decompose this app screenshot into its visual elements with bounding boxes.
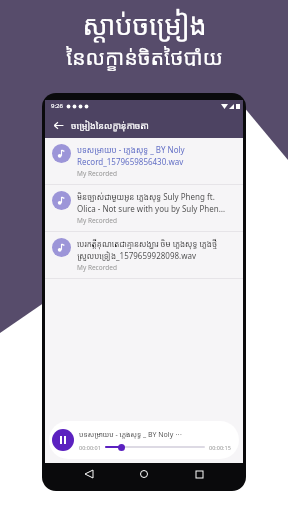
button[interactable]: មិនច្បាស់ជាមួយអូន ភ្លេងសុទ្ធ Suly Pheng … [45, 185, 243, 231]
staticText: 00:00:15 [209, 444, 231, 451]
staticText: ស្តាប់ចម្រៀង [82, 6, 207, 43]
staticText: មិនច្បាស់ជាមួយអូន ភ្លេងសុទ្ធ Suly Pheng … [77, 191, 215, 202]
staticText: Olica - Not sure with you by Suly Phen… [77, 203, 226, 214]
button[interactable]: Pause [52, 429, 74, 451]
staticText: បេរកត្តីគុណតេជាគ្មានសង្ឃារ ចិម ភ្លេងសុទ្… [77, 238, 217, 249]
button[interactable]: បទសម្រាយប - ភ្លេងសុទ្ធ _ BY Noly [45, 138, 243, 184]
button[interactable]: Back [45, 112, 71, 138]
staticText: ស្រួលបទ្រៀង_1579659928098.wav [77, 250, 197, 261]
staticText: នៃលក្ខាន់ចិតថៃបាំយ [66, 43, 223, 72]
staticText: My Recorded [77, 263, 117, 272]
staticText: Record_1579659856430.wav [77, 156, 184, 167]
staticText: My Recorded [77, 216, 117, 225]
button[interactable]: Home [133, 463, 155, 485]
staticText: ចម្រៀងនៃលក្ខាន់ុកាចតា [71, 119, 149, 131]
button[interactable]: បេរកត្តីគុណតេជាគ្មានសង្ឃារ ចិម ភ្លេងសុទ្… [45, 232, 243, 278]
staticText: បទសម្រាយប - ភ្លេងសុទ្ធ _ BY Noly ⋯ [79, 430, 183, 440]
staticText: 9:26 [51, 102, 63, 110]
button[interactable]: Back [78, 463, 100, 485]
staticText: បទសម្រាយប - ភ្លេងសុទ្ធ _ BY Noly [77, 144, 185, 155]
button[interactable]: Pause [49, 421, 239, 459]
staticText: 00:00:01 [79, 444, 101, 451]
button[interactable]: Recents [188, 463, 210, 485]
staticText: My Recorded [77, 169, 117, 178]
